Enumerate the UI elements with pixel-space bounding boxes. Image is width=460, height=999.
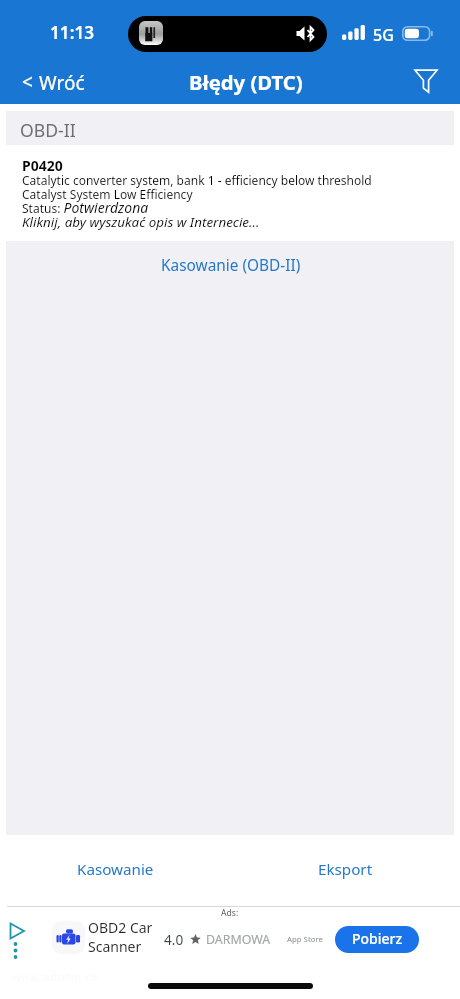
button[interactable]: Kasowanie xyxy=(0,835,230,906)
staticText: Wróć xyxy=(39,70,85,96)
staticText: Pobierz xyxy=(352,929,403,948)
staticText: Kasowanie (OBD-II) xyxy=(161,255,301,276)
staticText: < xyxy=(22,69,33,95)
button[interactable]: P0420 Catalytic converter system, bank 1… xyxy=(6,148,454,241)
staticText: Scanner xyxy=(88,937,142,956)
staticText: Ads: xyxy=(221,907,239,919)
staticText: DARMOWA xyxy=(206,931,271,948)
staticText: 5G xyxy=(373,24,394,46)
staticText: 11:13 xyxy=(50,21,95,44)
staticText: OBD2 Car xyxy=(88,918,153,937)
staticText: Eksport xyxy=(318,859,373,880)
button[interactable]: < xyxy=(0,62,101,104)
staticText: Błędy (DTC) xyxy=(189,68,303,96)
button[interactable]: Pobierz xyxy=(335,926,419,953)
staticText: Kasowanie xyxy=(77,859,154,880)
button[interactable]: Eksport xyxy=(230,835,460,906)
staticText: P0420 Catalytic converter system, bank 1… xyxy=(22,156,372,231)
staticText: App Store xyxy=(287,934,323,945)
staticText: 4.0 xyxy=(164,930,184,949)
button[interactable]: Kasowanie (OBD-II) xyxy=(147,247,315,284)
button[interactable]: Filter xyxy=(397,62,460,104)
staticText: OBD-II xyxy=(20,118,76,142)
